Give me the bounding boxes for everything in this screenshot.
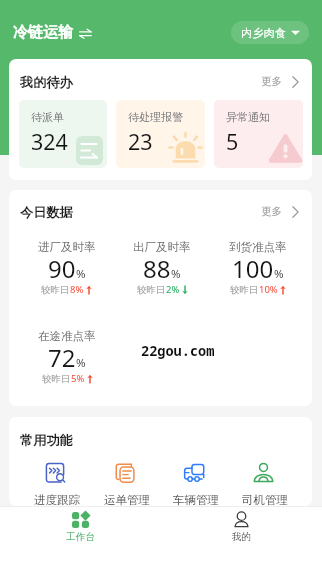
staticText: 在途准点率 — [38, 329, 96, 343]
staticText: 进厂及时率 — [38, 240, 96, 254]
staticText: 2% — [166, 283, 180, 296]
button[interactable]: 冷链运输 — [13, 23, 92, 42]
staticText: 100 — [232, 252, 274, 285]
staticText: 车辆管理 — [173, 493, 219, 506]
staticText: 88 — [143, 252, 171, 285]
button[interactable]: 更多 — [261, 75, 299, 88]
staticText: % — [274, 266, 284, 282]
staticText: 较昨日 — [230, 284, 259, 296]
staticText: 常用功能 — [20, 432, 73, 449]
staticText: 冷链运输 — [13, 23, 73, 42]
staticText: 10% — [259, 283, 278, 296]
button[interactable]: 运单管理 — [92, 463, 161, 506]
button[interactable]: 我的 — [161, 507, 322, 572]
button[interactable]: 司机管理 — [230, 463, 299, 506]
staticText: 待派单 — [31, 110, 64, 124]
staticText: 90 — [48, 252, 76, 285]
staticText: 工作台 — [66, 531, 95, 543]
staticText: 待处理报警 — [128, 110, 183, 124]
staticText: 司机管理 — [242, 493, 288, 506]
staticText: 今日数据 — [20, 204, 73, 221]
staticText: 5% — [71, 372, 85, 385]
staticText: 运单管理 — [104, 493, 150, 506]
staticText: 22gou.com — [141, 341, 215, 360]
staticText: 进度跟踪 — [34, 493, 80, 506]
button[interactable]: 待派单 — [19, 100, 107, 168]
staticText: 较昨日 — [137, 284, 166, 296]
staticText: 72 — [48, 341, 76, 374]
staticText: 我的待办 — [20, 74, 73, 91]
button[interactable]: 内乡肉食 — [231, 21, 309, 44]
staticText: 23 — [128, 127, 153, 156]
staticText: 8% — [70, 283, 84, 296]
staticText: 更多 — [261, 75, 282, 88]
button[interactable]: 工作台 — [0, 507, 161, 572]
staticText: % — [171, 266, 181, 282]
other: 切换 — [79, 27, 92, 39]
button[interactable]: 更多 — [261, 205, 299, 218]
staticText: 更多 — [261, 205, 282, 218]
staticText: 5 — [226, 127, 239, 156]
staticText: 出厂及时率 — [133, 240, 191, 254]
staticText: % — [76, 355, 86, 371]
staticText: 324 — [31, 127, 68, 156]
staticText: 较昨日 — [41, 284, 70, 296]
staticText: 我的 — [232, 531, 252, 543]
button[interactable]: 进度跟踪 — [22, 463, 92, 506]
button[interactable]: 待处理报警 — [116, 100, 205, 168]
staticText: 异常通知 — [226, 110, 270, 124]
staticText: % — [76, 266, 86, 282]
staticText: 到货准点率 — [229, 240, 287, 254]
button[interactable]: 车辆管理 — [161, 463, 230, 506]
button[interactable]: 异常通知 — [214, 100, 303, 168]
staticText: 内乡肉食 — [241, 26, 287, 40]
staticText: 较昨日 — [42, 373, 71, 385]
